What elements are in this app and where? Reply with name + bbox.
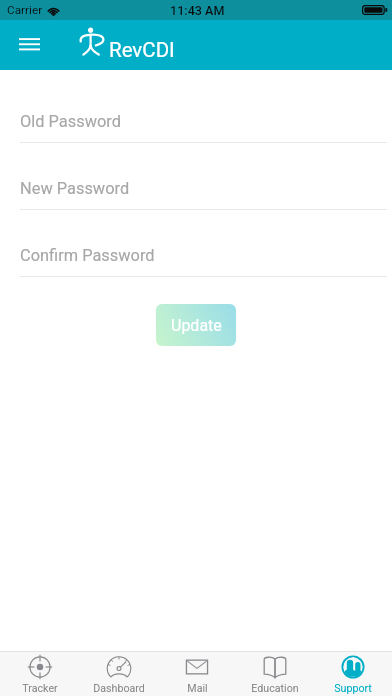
staticText: Carrier [7, 3, 43, 17]
button[interactable]: Support [314, 652, 392, 696]
button[interactable]: Mail [158, 652, 236, 696]
staticText: RevCDI [109, 38, 175, 62]
staticText: 11:43 AM [170, 3, 225, 18]
button[interactable]: Tracker [0, 652, 79, 696]
button[interactable]: Education [236, 652, 314, 696]
staticText: Old Password [20, 112, 121, 131]
button[interactable]: Menu [11, 25, 47, 61]
staticText: Tracker [22, 682, 58, 695]
staticText: Education [251, 682, 299, 695]
staticText: Dashboard [93, 682, 145, 695]
staticText: Support [334, 682, 372, 695]
staticText: Confirm Password [20, 246, 155, 265]
button[interactable]: Dashboard [79, 652, 158, 696]
staticText: New Password [20, 179, 130, 198]
staticText: Update [171, 316, 222, 335]
staticText: Mail [187, 682, 208, 695]
button[interactable]: Update [156, 304, 236, 346]
